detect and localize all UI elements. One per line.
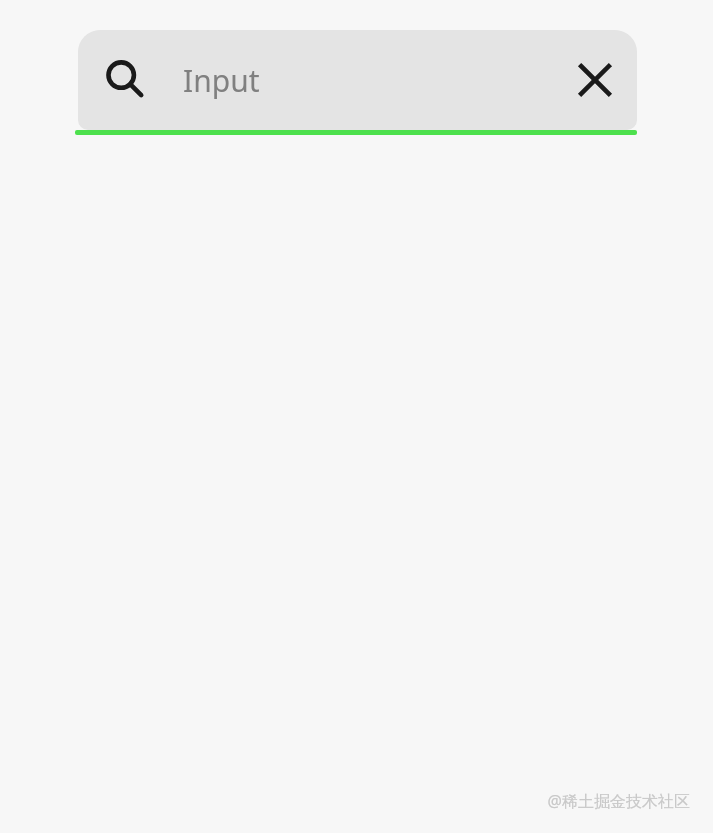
button[interactable]: Search [78, 30, 637, 130]
button[interactable]: Clear [571, 56, 619, 104]
button[interactable]: Search [104, 59, 146, 101]
staticText: @稀土掘金技术社区 [547, 790, 690, 812]
staticText: Input [183, 60, 260, 101]
